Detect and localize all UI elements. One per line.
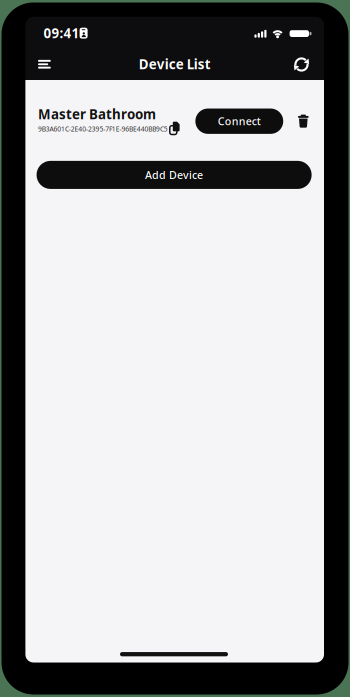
button[interactable]: Refresh	[288, 51, 314, 77]
button[interactable]: Delete device	[294, 111, 312, 131]
button[interactable]: Add Device	[36, 161, 312, 189]
staticText: 9B3A601C-2E40-2395-7F1E-96BE440BB9C5	[38, 124, 168, 133]
staticText: Connect	[218, 114, 261, 128]
staticText: Master Bathroom	[38, 105, 156, 123]
button[interactable]: Connect	[195, 108, 283, 134]
staticText: Device List	[139, 55, 211, 73]
staticText: Add Device	[145, 168, 203, 182]
button[interactable]: Menu	[32, 52, 56, 76]
button[interactable]: Copy device ID	[168, 121, 182, 137]
staticText: 09:41	[43, 24, 79, 42]
